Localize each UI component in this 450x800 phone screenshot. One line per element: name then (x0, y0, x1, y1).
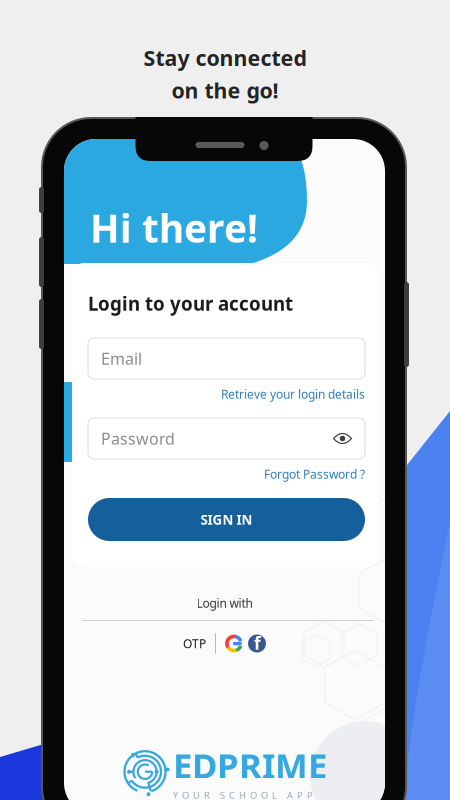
staticText: OTP (183, 635, 206, 651)
staticText: Stay connected (143, 44, 306, 72)
staticText: Password (101, 428, 175, 449)
staticText: Retrieve your login details (221, 386, 365, 402)
staticText: EDPRIME (173, 742, 327, 788)
button[interactable]: Forgot Password ? (88, 467, 365, 481)
staticText: Login to your account (88, 291, 293, 316)
staticText: SIGN IN (200, 511, 252, 528)
staticText: Forgot Password ? (264, 466, 365, 482)
staticText: Login with (196, 595, 252, 611)
staticText: f (254, 631, 261, 654)
staticText: Email (101, 348, 142, 369)
staticText: Hi there! (90, 202, 258, 253)
button[interactable]: SIGN IN (88, 498, 365, 541)
staticText: Y O U R S C H O O L A P P (173, 789, 313, 800)
button[interactable]: Retrieve your login details (88, 387, 365, 401)
staticText: on the go! (171, 76, 278, 104)
